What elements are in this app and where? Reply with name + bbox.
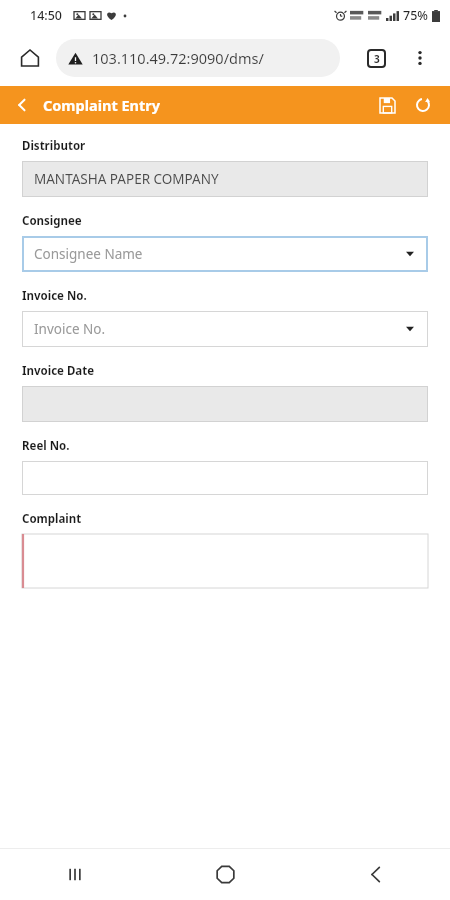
button[interactable]: Invoice No. dropdown [22,311,428,347]
staticText: Invoice No. [22,288,87,304]
button[interactable]: Complaint input [22,534,428,588]
button[interactable]: Reset [406,88,440,122]
staticText: Consignee Name [34,245,404,263]
staticText: 103.110.49.72:9090/dms/ [92,48,264,68]
button[interactable]: Consignee Name dropdown [22,236,428,272]
button[interactable]: Reel No. input [22,461,428,495]
button[interactable]: Back [300,849,450,900]
staticText: Complaint Entry [43,95,161,115]
button[interactable]: Home [150,849,300,900]
button[interactable]: Recents [0,849,150,900]
button[interactable]: Back [4,87,40,123]
button[interactable]: Tabs, 3 open [358,40,394,76]
button[interactable]: Save [370,88,404,122]
staticText: Reel No. [22,438,70,454]
staticText: 3 [374,52,380,66]
staticText: Distributor [22,138,86,154]
staticText: Invoice No. [34,320,404,338]
button[interactable]: 103.110.49.72:9090/dms/ [56,39,340,77]
staticText: MANTASHA PAPER COMPANY [34,170,219,188]
button[interactable]: More options [402,40,438,76]
staticText: 14:50 [30,7,63,24]
button[interactable]: Home [10,38,50,78]
staticText: Invoice Date [22,363,95,379]
staticText: 75% [403,7,428,24]
staticText: Complaint [22,511,82,527]
staticText: Consignee [22,213,82,229]
